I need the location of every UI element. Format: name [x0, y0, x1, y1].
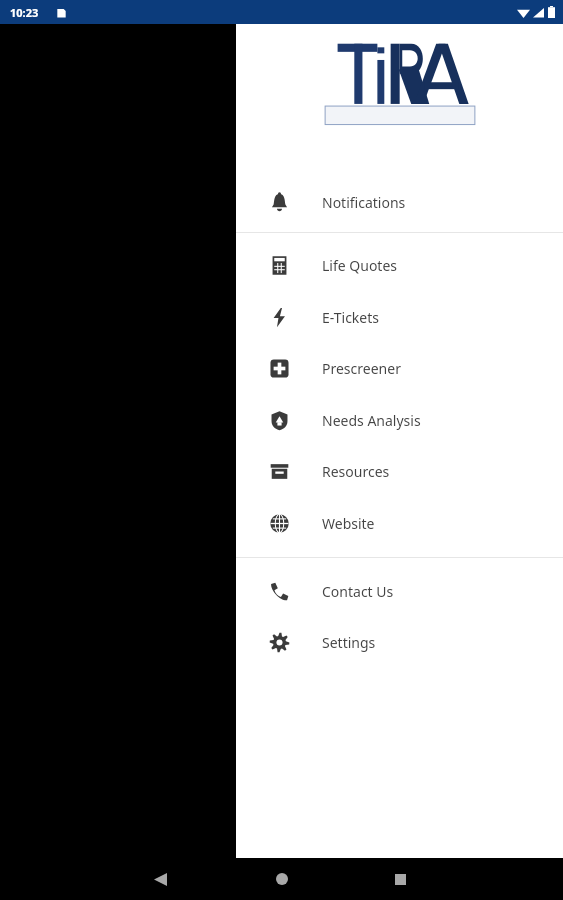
button[interactable]: Life Quotes: [236, 240, 563, 291]
staticText: 10:23: [10, 5, 39, 20]
button[interactable]: Back: [140, 859, 180, 899]
staticText: Settings: [322, 633, 376, 652]
button[interactable]: Home: [262, 859, 302, 899]
staticText: Notifications: [322, 193, 406, 212]
button[interactable]: Resources: [236, 446, 563, 497]
staticText: Prescreener: [322, 359, 401, 378]
button[interactable]: Recent apps: [380, 859, 420, 899]
button[interactable]: Settings: [236, 617, 563, 668]
button[interactable]: Needs Analysis: [236, 394, 563, 446]
button[interactable]: Notifications: [236, 173, 563, 232]
staticText: Website: [322, 514, 375, 533]
button[interactable]: Prescreener: [236, 343, 563, 394]
staticText: E-Tickets: [322, 308, 379, 327]
staticText: Contact Us: [322, 582, 394, 601]
button[interactable]: Website: [236, 497, 563, 549]
staticText: Resources: [322, 462, 390, 481]
button[interactable]: Contact Us: [236, 566, 563, 617]
button[interactable]: E-Tickets: [236, 291, 563, 343]
staticText: Needs Analysis: [322, 411, 421, 430]
staticText: Life Quotes: [322, 256, 398, 275]
